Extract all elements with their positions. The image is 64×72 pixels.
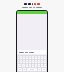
button[interactable]: Key: [35, 60, 37, 63]
button[interactable]: Key: [18, 56, 19, 59]
button[interactable]: Enter: [42, 68, 46, 71]
button[interactable]: [18, 50, 46, 54]
button[interactable]: Key: [20, 60, 22, 63]
button[interactable]: Key: [32, 64, 34, 67]
button[interactable]: Key: [23, 56, 25, 59]
button[interactable]: Key: [29, 64, 31, 67]
button[interactable]: Key: [41, 60, 43, 63]
button[interactable]: Key: [26, 60, 28, 63]
button[interactable]: Key: [20, 56, 22, 59]
button[interactable]: Key: [44, 56, 46, 59]
button[interactable]: Key: [18, 60, 19, 63]
button[interactable]: Key: [26, 64, 28, 67]
button[interactable]: Comma: [23, 68, 26, 71]
button[interactable]: Key: [41, 56, 43, 59]
button[interactable]: Key: [32, 56, 34, 59]
button[interactable]: Key: [44, 64, 46, 67]
button[interactable]: Key: [41, 64, 43, 67]
button[interactable]: Space: [27, 68, 37, 71]
button[interactable]: Period: [38, 68, 41, 71]
button[interactable]: Key: [23, 60, 25, 63]
button[interactable]: Key: [32, 60, 34, 63]
button[interactable]: Key: [29, 60, 31, 63]
button[interactable]: Key: [38, 60, 40, 63]
button[interactable]: Key: [35, 64, 37, 67]
button[interactable]: Key: [44, 60, 46, 63]
button[interactable]: Key: [26, 56, 28, 59]
button[interactable]: Key: [29, 56, 31, 59]
button[interactable]: Key: [22, 64, 25, 67]
button[interactable]: App bar: [17, 11, 47, 14]
button[interactable]: Key: [18, 64, 21, 67]
button[interactable]: Key: [38, 64, 40, 67]
button[interactable]: [0, 3, 64, 5]
button[interactable]: Symbols: [18, 68, 22, 71]
button[interactable]: Key: [38, 56, 40, 59]
button[interactable]: Key: [35, 56, 37, 59]
